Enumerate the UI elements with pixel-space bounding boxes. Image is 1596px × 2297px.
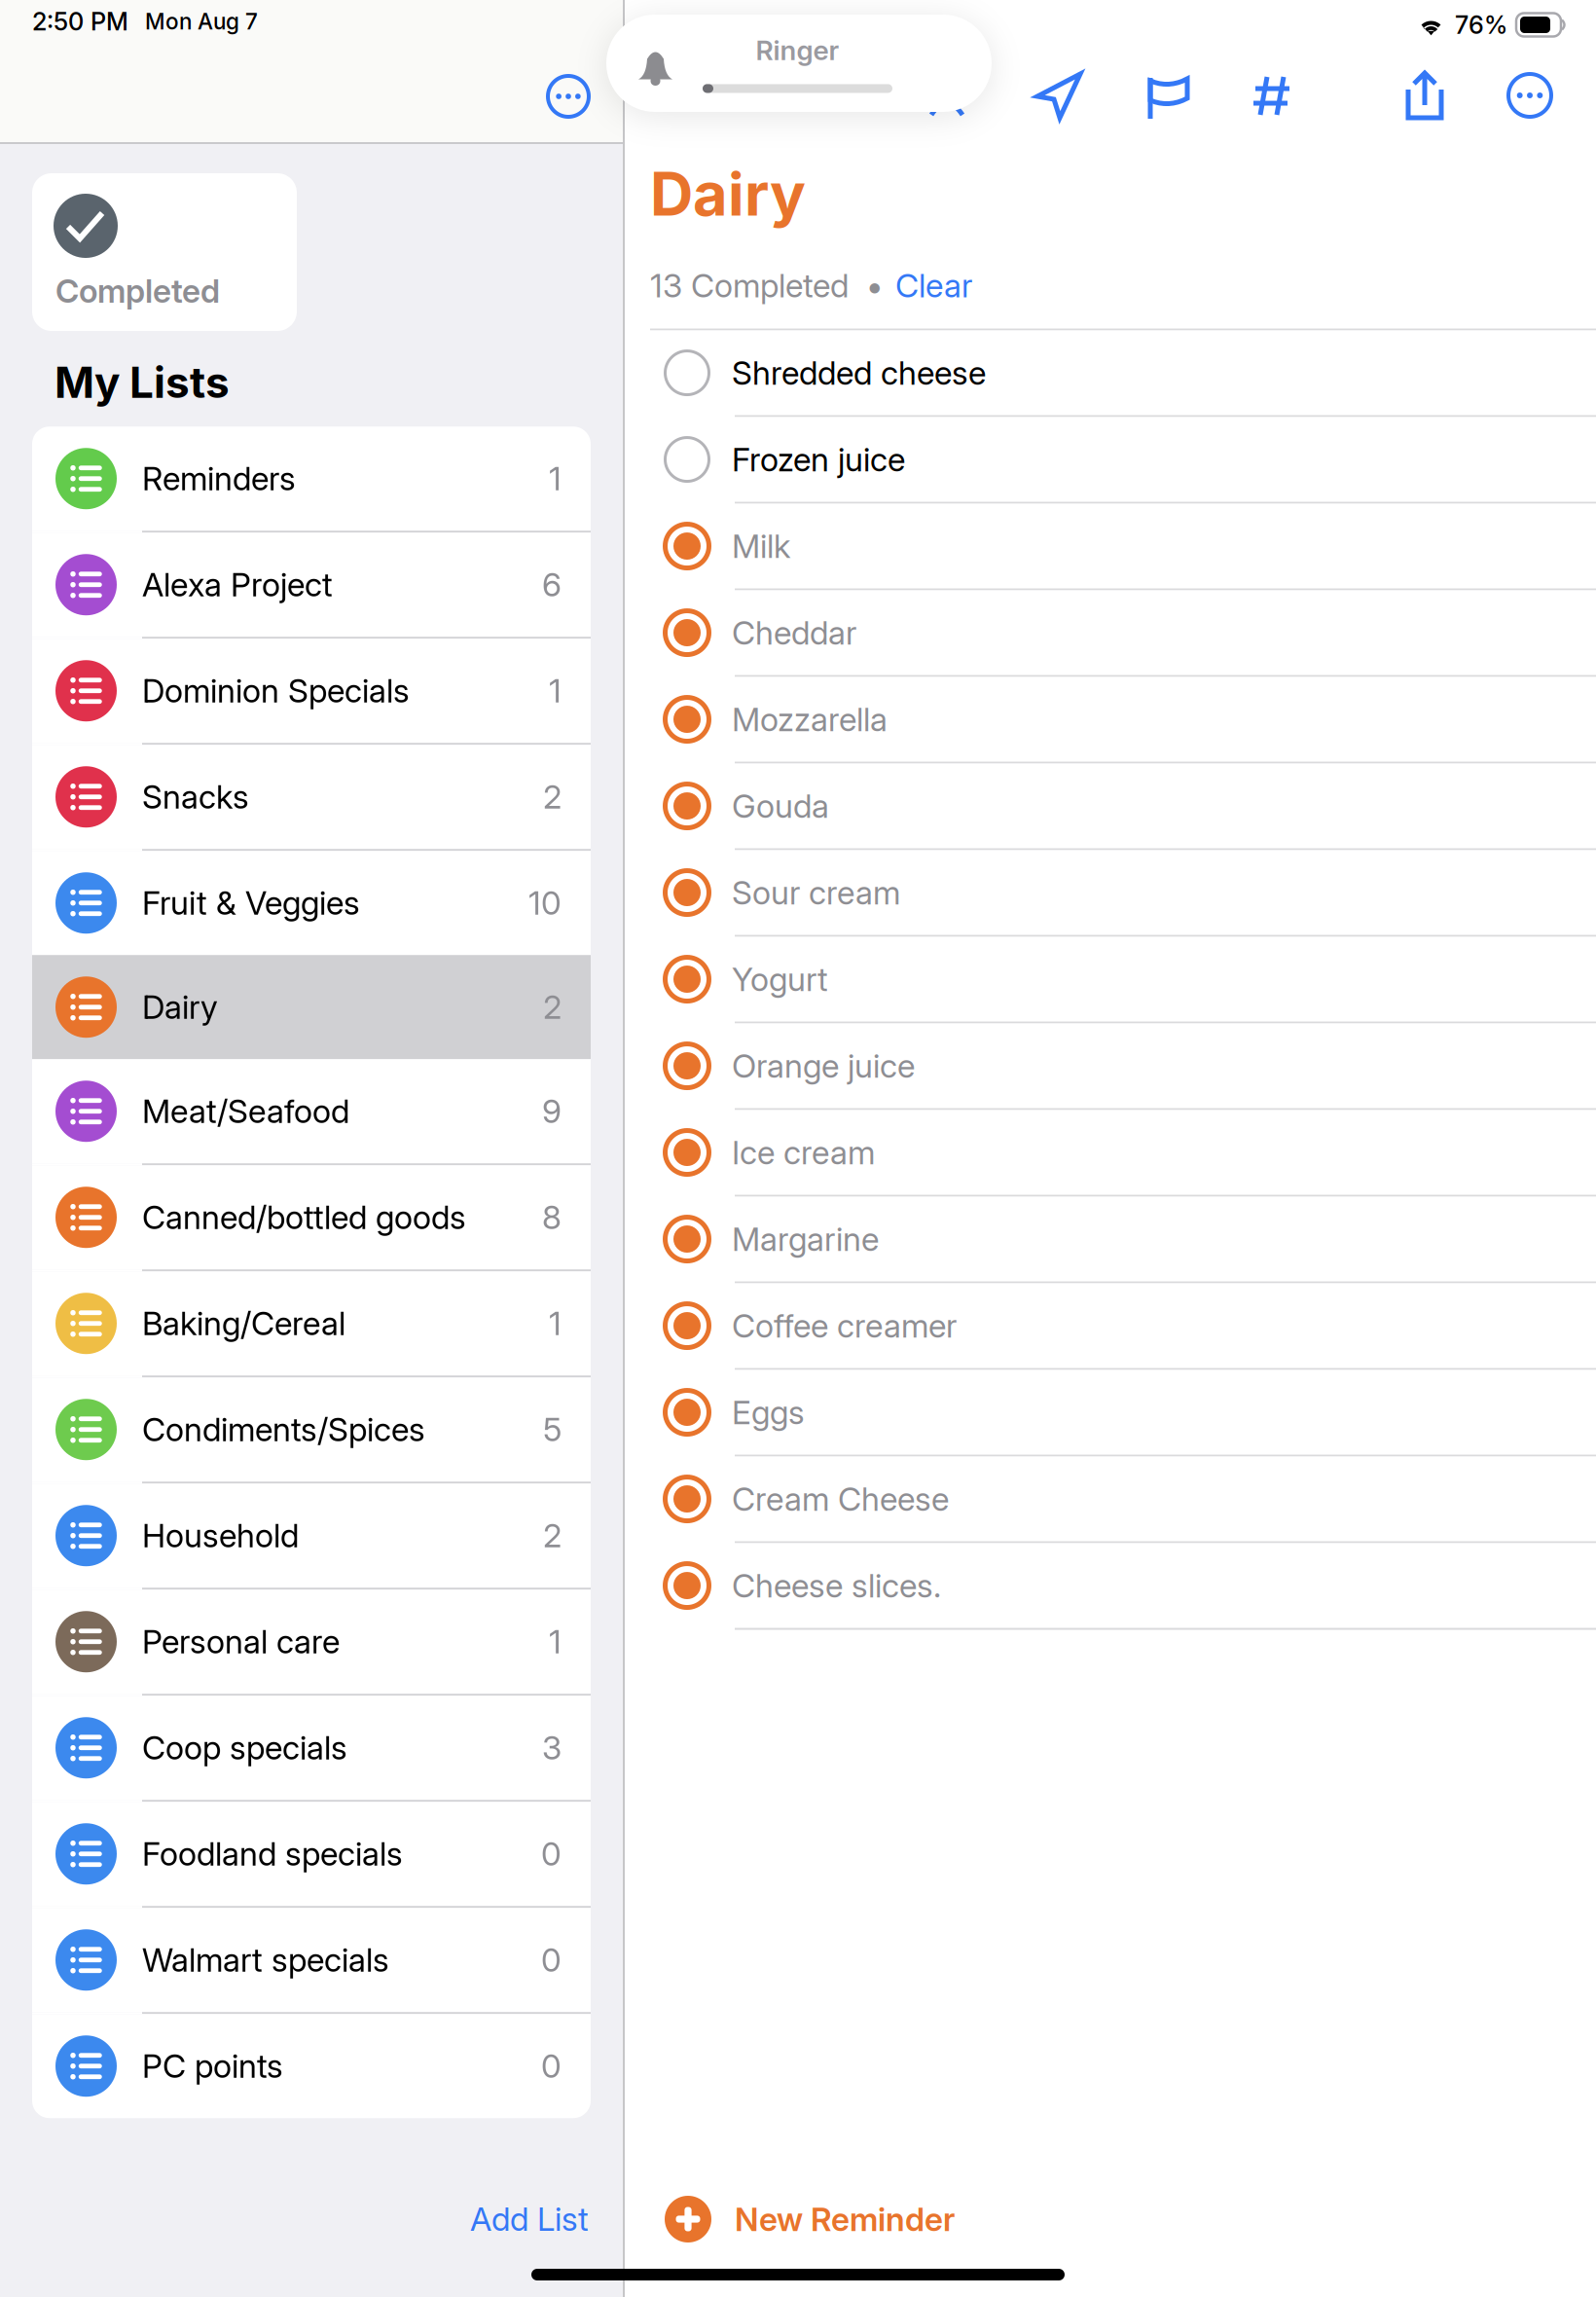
staticText: Dairy	[650, 158, 806, 230]
staticText: 1	[549, 1304, 562, 1343]
staticText: 2	[543, 1516, 562, 1555]
staticText: Cheddar	[732, 613, 856, 652]
staticText: 1	[549, 1622, 562, 1661]
staticText: 9	[542, 1092, 562, 1131]
button[interactable]: Coop specials	[32, 1696, 591, 1800]
staticText: Alexa Project	[142, 565, 333, 604]
button[interactable]: Completed	[32, 173, 297, 331]
button[interactable]: Foodland specials	[32, 1802, 591, 1906]
staticText: 5	[543, 1410, 562, 1449]
staticText: 2	[543, 777, 562, 817]
button[interactable]: Meat/Seafood	[32, 1059, 591, 1163]
button[interactable]: Margarine	[625, 1197, 1596, 1281]
staticText: Dairy	[142, 988, 218, 1027]
button[interactable]: Add List	[453, 2182, 606, 2256]
button[interactable]: Shredded cheese	[625, 330, 1596, 415]
staticText: 1	[549, 671, 562, 710]
staticText: 0	[541, 2046, 562, 2086]
button[interactable]: Yogurt	[625, 937, 1596, 1021]
button[interactable]: Ice cream	[625, 1110, 1596, 1195]
staticText: Shredded cheese	[732, 353, 986, 392]
staticText: 3	[542, 1728, 562, 1767]
staticText: 0	[541, 1834, 562, 1874]
staticText: PC points	[142, 2046, 283, 2086]
button[interactable]: Share	[1394, 66, 1456, 125]
button[interactable]: Alexa Project	[32, 533, 591, 637]
staticText: Household	[142, 1516, 299, 1555]
staticText: Coffee creamer	[732, 1306, 957, 1345]
staticText: 76%	[1455, 10, 1507, 40]
staticText: Fruit & Veggies	[142, 883, 360, 923]
button[interactable]: Eggs	[625, 1370, 1596, 1455]
staticText: Coop specials	[142, 1728, 347, 1767]
staticText: 2:50 PM	[32, 7, 128, 36]
button[interactable]: Cream Cheese	[625, 1457, 1596, 1541]
button[interactable]: Orange juice	[625, 1023, 1596, 1108]
staticText: Yogurt	[732, 960, 828, 999]
button[interactable]: Baking/Cereal	[32, 1271, 591, 1375]
button[interactable]: Tags	[1241, 66, 1303, 125]
button[interactable]: Snacks	[32, 745, 591, 849]
button[interactable]: Walmart specials	[32, 1908, 591, 2012]
staticText: Eggs	[732, 1393, 805, 1432]
button[interactable]: Mozzarella	[625, 677, 1596, 762]
button[interactable]: Flag	[1138, 66, 1200, 125]
button[interactable]: Fruit & Veggies	[32, 851, 591, 955]
staticText: 13 Completed •	[650, 266, 883, 305]
staticText: Cream Cheese	[732, 1479, 949, 1519]
staticText: New Reminder	[735, 2199, 955, 2239]
staticText: Meat/Seafood	[142, 1092, 349, 1131]
staticText: Milk	[732, 526, 790, 566]
staticText: Mozzarella	[732, 700, 888, 739]
staticText: Ringer	[756, 34, 839, 67]
button[interactable]: PC points	[32, 2014, 591, 2118]
staticText: 6	[542, 565, 562, 604]
button[interactable]: Dairy	[32, 955, 591, 1059]
staticText: Clear	[895, 266, 972, 305]
button[interactable]: New Reminder	[625, 2172, 1596, 2266]
staticText: Reminders	[142, 459, 296, 498]
button[interactable]: Dominion Specials	[32, 639, 591, 743]
staticText: 10	[528, 883, 562, 923]
button[interactable]: Condiments/Spices	[32, 1377, 591, 1482]
button[interactable]: Household	[32, 1484, 591, 1588]
button[interactable]: Location	[1028, 66, 1090, 125]
staticText: My Lists	[54, 356, 230, 408]
staticText: 1	[549, 459, 562, 498]
button[interactable]: Add People	[918, 66, 980, 125]
button[interactable]: Gouda	[625, 764, 1596, 848]
button[interactable]: Coffee creamer	[625, 1283, 1596, 1368]
button[interactable]: Reminders	[32, 427, 591, 531]
staticText: Condiments/Spices	[142, 1410, 425, 1449]
staticText: 8	[542, 1198, 562, 1237]
staticText: Canned/bottled goods	[142, 1198, 466, 1237]
staticText: Foodland specials	[142, 1834, 403, 1874]
staticText: Baking/Cereal	[142, 1304, 345, 1343]
button[interactable]: Personal care	[32, 1590, 591, 1694]
button[interactable]: Canned/bottled goods	[32, 1165, 591, 1269]
button[interactable]: More	[1499, 66, 1561, 125]
staticText: Frozen juice	[732, 440, 905, 479]
staticText: Margarine	[732, 1219, 879, 1259]
staticText: Dominion Specials	[142, 671, 410, 710]
button[interactable]: Milk	[625, 504, 1596, 588]
button[interactable]: Clear	[883, 266, 972, 305]
staticText: Cheese slices.	[732, 1566, 941, 1605]
staticText: Snacks	[142, 777, 249, 817]
staticText: Add List	[470, 2199, 589, 2239]
staticText: Completed	[55, 271, 220, 310]
button[interactable]: Frozen juice	[625, 417, 1596, 502]
staticText: 2	[543, 988, 562, 1027]
staticText: Personal care	[142, 1622, 340, 1661]
button[interactable]: More	[538, 66, 598, 127]
staticText: Walmart specials	[142, 1940, 389, 1980]
button[interactable]: Sour cream	[625, 850, 1596, 935]
staticText: Sour cream	[732, 873, 900, 912]
staticText: Mon Aug 7	[145, 8, 258, 35]
button[interactable]: Cheese slices.	[625, 1543, 1596, 1628]
staticText: Ice cream	[732, 1133, 875, 1172]
button[interactable]: Cheddar	[625, 590, 1596, 675]
staticText: Gouda	[732, 786, 829, 826]
staticText: 0	[541, 1940, 562, 1980]
staticText: Orange juice	[732, 1046, 915, 1085]
